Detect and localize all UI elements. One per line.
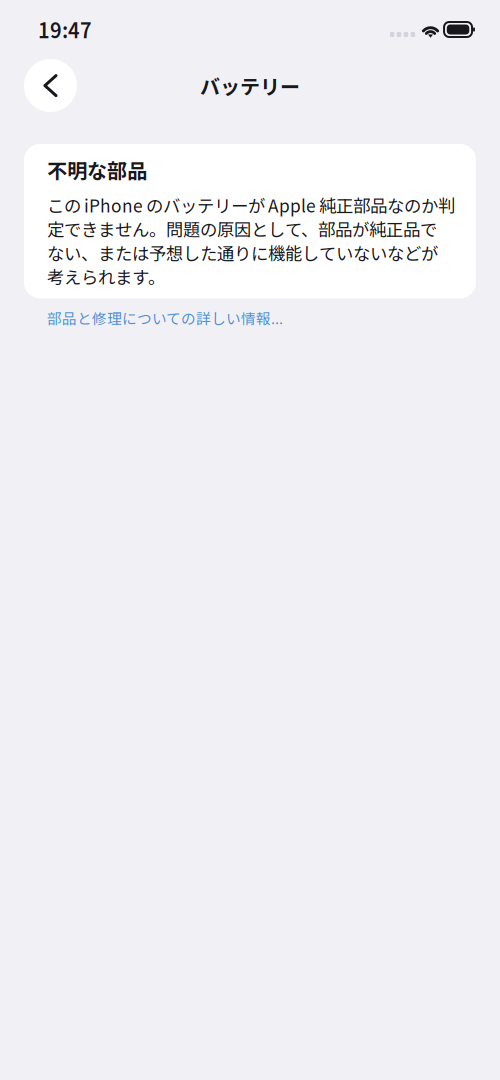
button[interactable]: 部品と修理についての詳しい情報... [0, 303, 283, 332]
button[interactable]: 戻る [24, 59, 77, 112]
staticText: 19:47 [38, 15, 92, 44]
staticText: バッテリー [200, 71, 300, 100]
staticText: 部品と修理についての詳しい情報... [47, 307, 283, 328]
staticText: 不明な部品 [47, 155, 147, 184]
staticText: この iPhone のバッテリーが Apple 純正部品なのか判 定できません。… [47, 193, 455, 288]
